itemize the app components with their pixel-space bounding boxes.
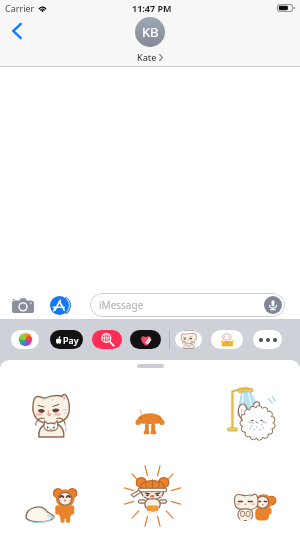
staticText: 11:47 PM — [132, 2, 172, 14]
button[interactable]: More apps — [253, 330, 282, 349]
button[interactable]: Apple Pay — [50, 330, 83, 349]
button[interactable]: Cat sticker pack — [174, 330, 203, 349]
button[interactable]: iMessage — [90, 293, 285, 317]
button[interactable]: Two friends sticker — [200, 454, 300, 533]
button[interactable]: Excited bear sticker — [100, 454, 200, 533]
button[interactable]: Camera — [11, 294, 35, 316]
staticText: Kate — [137, 51, 157, 63]
staticText: iMessage — [99, 298, 144, 312]
button[interactable]: Back — [2, 16, 32, 46]
staticText: Carrier — [5, 2, 35, 14]
button[interactable]: App Store — [50, 296, 69, 315]
button[interactable]: Digital Touch — [130, 330, 161, 349]
button[interactable]: Bear pillow sticker — [0, 454, 100, 533]
staticText: KB — [142, 23, 159, 41]
button[interactable]: Dictate — [264, 296, 282, 314]
button[interactable]: Bunny shower sticker — [200, 370, 300, 454]
button[interactable]: Images — [92, 330, 122, 349]
button[interactable]: Sticker pack — [211, 330, 243, 349]
button[interactable]: KB — [135, 17, 165, 63]
button[interactable]: Angry cat sticker — [0, 370, 100, 454]
button[interactable]: Photos — [11, 330, 39, 349]
button[interactable]: Mushroom sticker — [100, 370, 200, 454]
staticText: Pay — [63, 334, 79, 346]
